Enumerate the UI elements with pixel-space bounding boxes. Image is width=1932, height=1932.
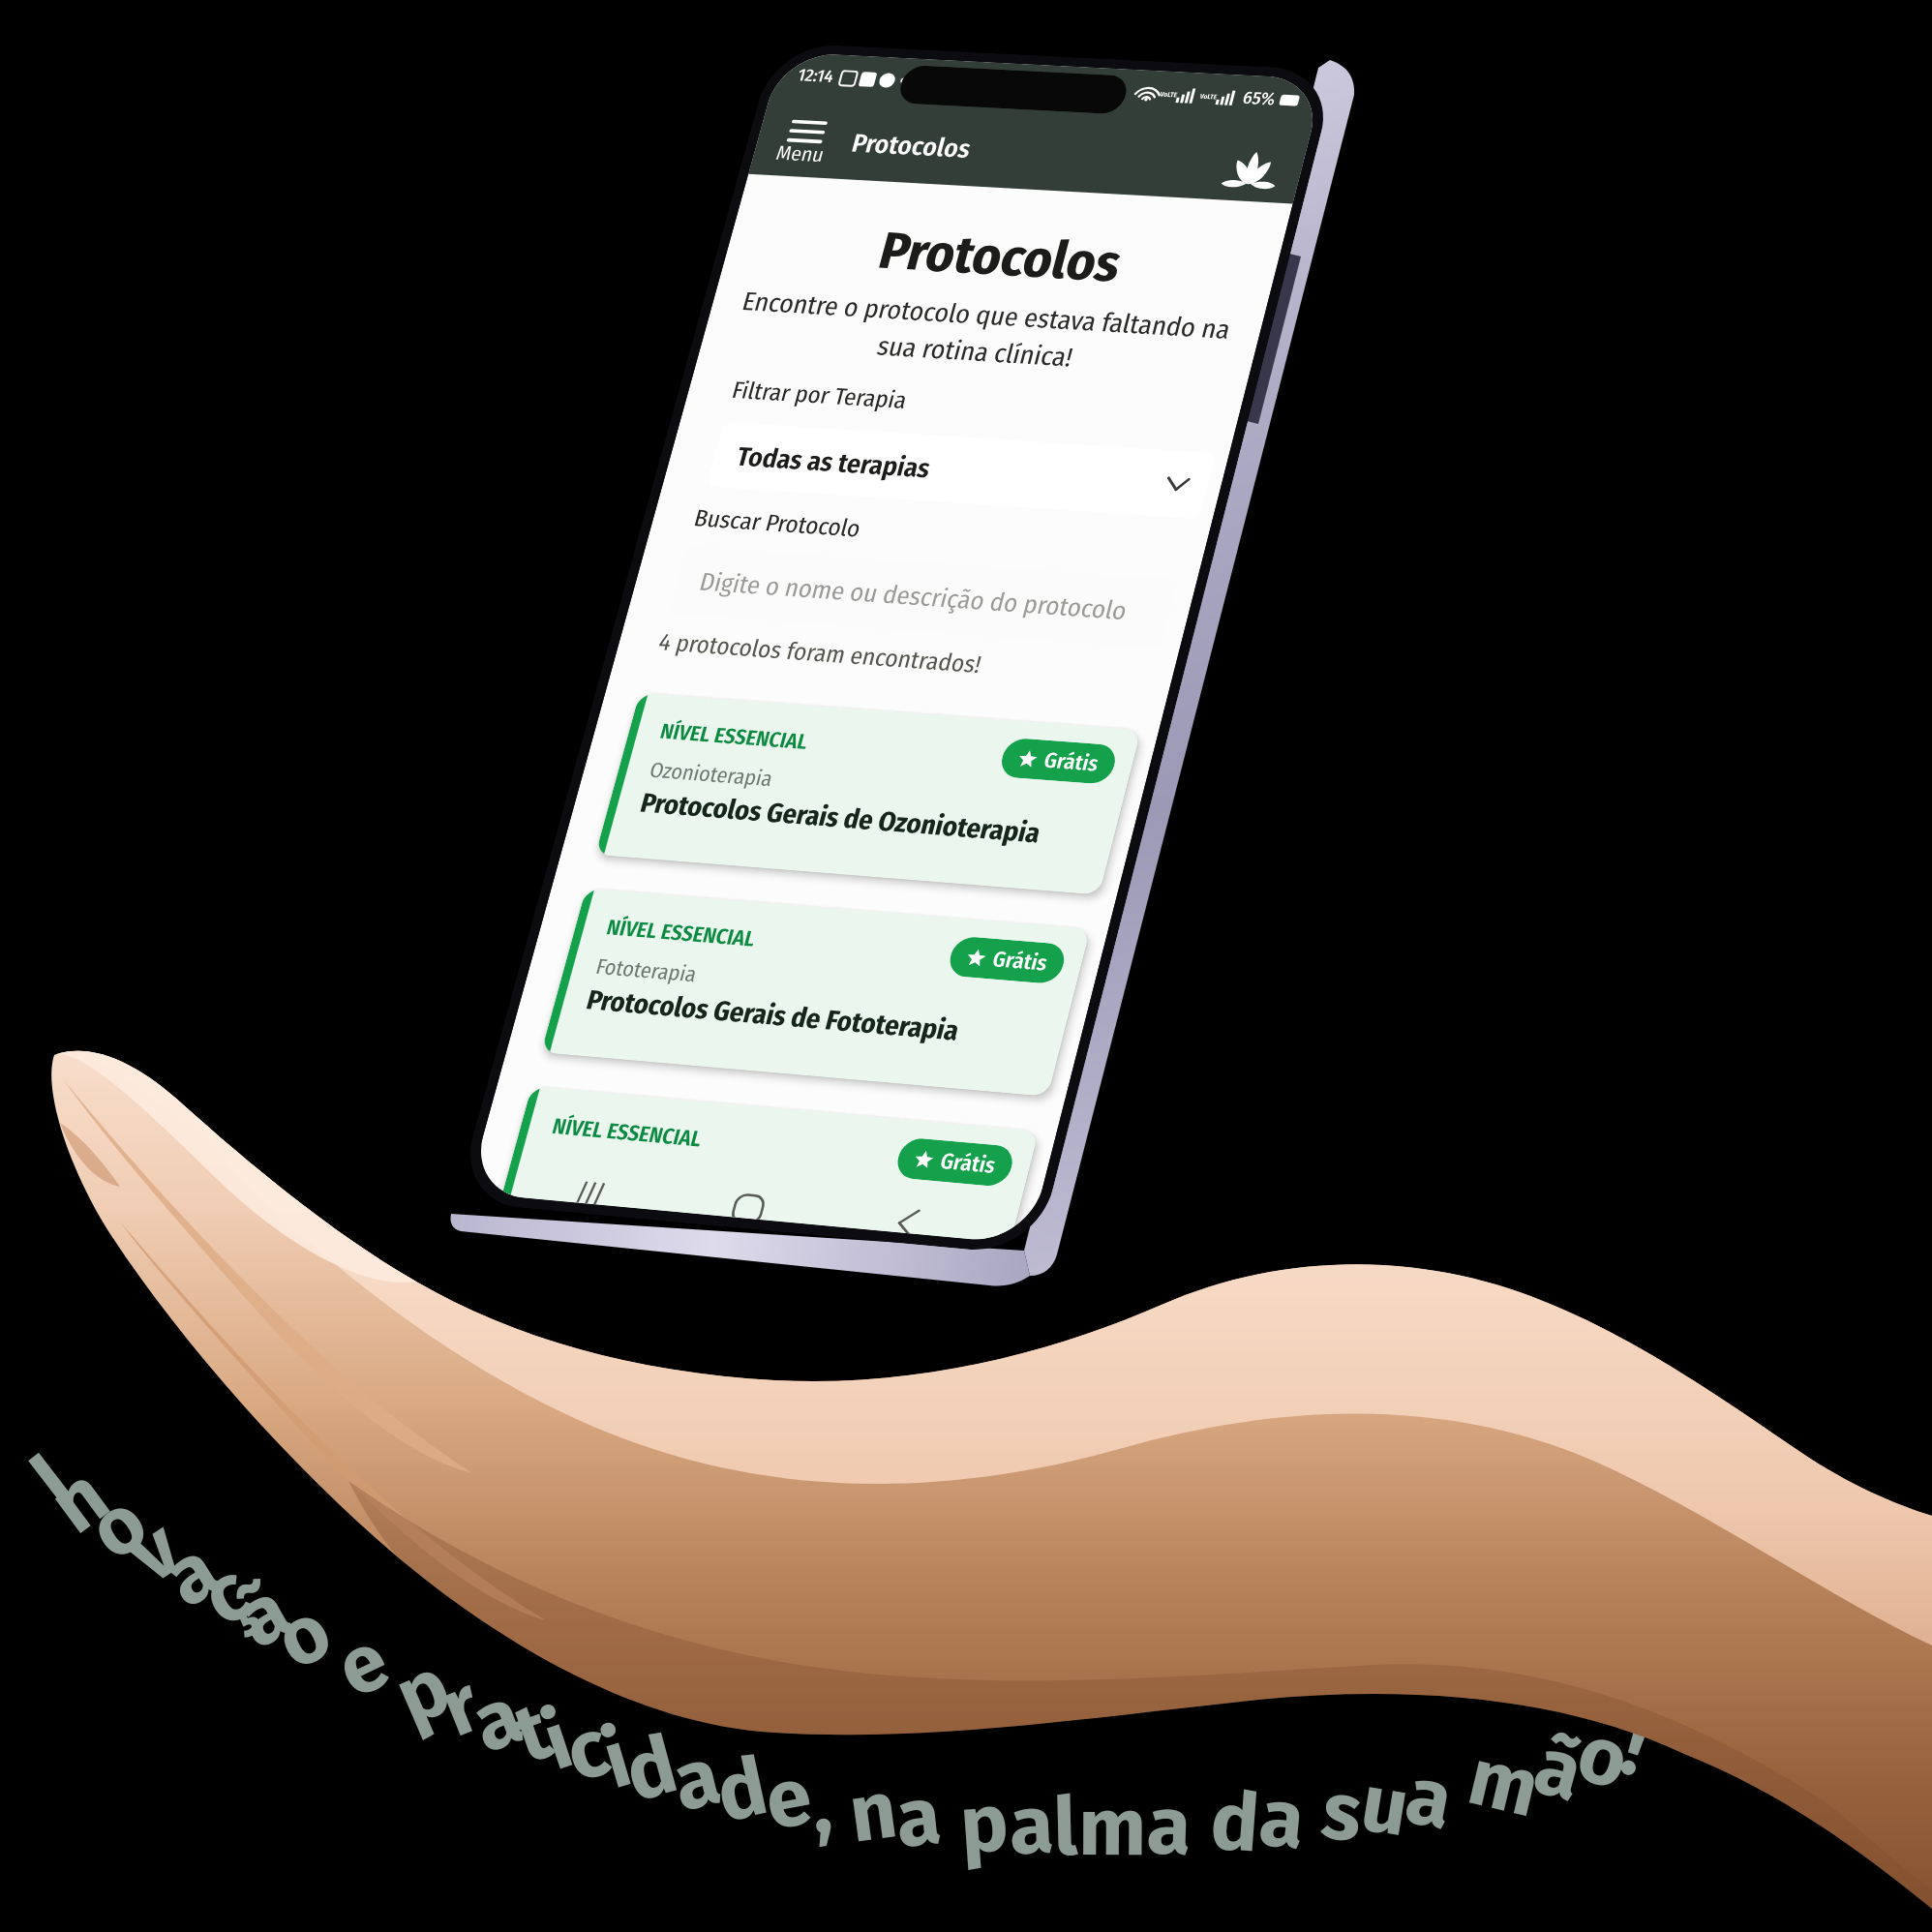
staticText: Todas as terapias — [733, 441, 935, 484]
staticText: Fototerapia — [593, 954, 700, 987]
button[interactable]: Logo — [1216, 142, 1287, 199]
button[interactable]: Recents — [562, 1167, 623, 1206]
staticText: Protocolos — [721, 211, 1283, 304]
button[interactable]: Todas as terapias — [706, 422, 1216, 519]
staticText: Filtrar por Terapia — [729, 376, 911, 414]
button[interactable]: Grátis — [946, 936, 1068, 985]
staticText: NÍVEL ESSENCIAL — [549, 1113, 706, 1152]
button[interactable]: Grátis — [893, 1137, 1017, 1187]
staticText: Grátis — [1041, 747, 1102, 777]
staticText: VoLTE — [1199, 92, 1218, 101]
staticText: Grátis — [938, 1148, 999, 1179]
staticText: Ozonioterapia — [647, 757, 776, 792]
staticText: Protocolos Gerais de Ozonioterapia — [637, 786, 1044, 850]
button[interactable]: Menu — [771, 120, 836, 167]
staticText: Digite o nome ou descrição do protocolo — [696, 567, 1131, 627]
staticText: VoLTE — [1159, 90, 1178, 99]
button[interactable]: Back — [878, 1196, 940, 1235]
staticText: NÍVEL ESSENCIAL — [657, 719, 812, 755]
staticText: Protocolos Gerais de Fototerapia — [583, 983, 964, 1048]
staticText: 65% — [1240, 87, 1279, 110]
button[interactable]: NÍVEL ESSENCIAL — [502, 1086, 1039, 1243]
staticText: Buscar Protocolo — [691, 504, 865, 542]
staticText: 4 protocolos foram encontrados! — [656, 628, 985, 678]
staticText: 12:14 — [795, 65, 837, 88]
button[interactable]: NÍVEL ESSENCIAL — [541, 888, 1090, 1097]
staticText: Menu — [773, 141, 827, 167]
staticText: Protocolos — [848, 128, 975, 164]
button[interactable]: NÍVEL ESSENCIAL — [595, 693, 1141, 895]
button[interactable]: Grátis — [997, 737, 1119, 785]
staticText: Grátis — [990, 946, 1051, 976]
staticText: Encontre o protocolo que estava faltando… — [719, 285, 1244, 383]
staticText: NÍVEL ESSENCIAL — [604, 915, 759, 952]
button[interactable]: Digite o nome ou descrição do protocolo — [668, 546, 1178, 649]
button[interactable]: Home — [719, 1181, 780, 1221]
